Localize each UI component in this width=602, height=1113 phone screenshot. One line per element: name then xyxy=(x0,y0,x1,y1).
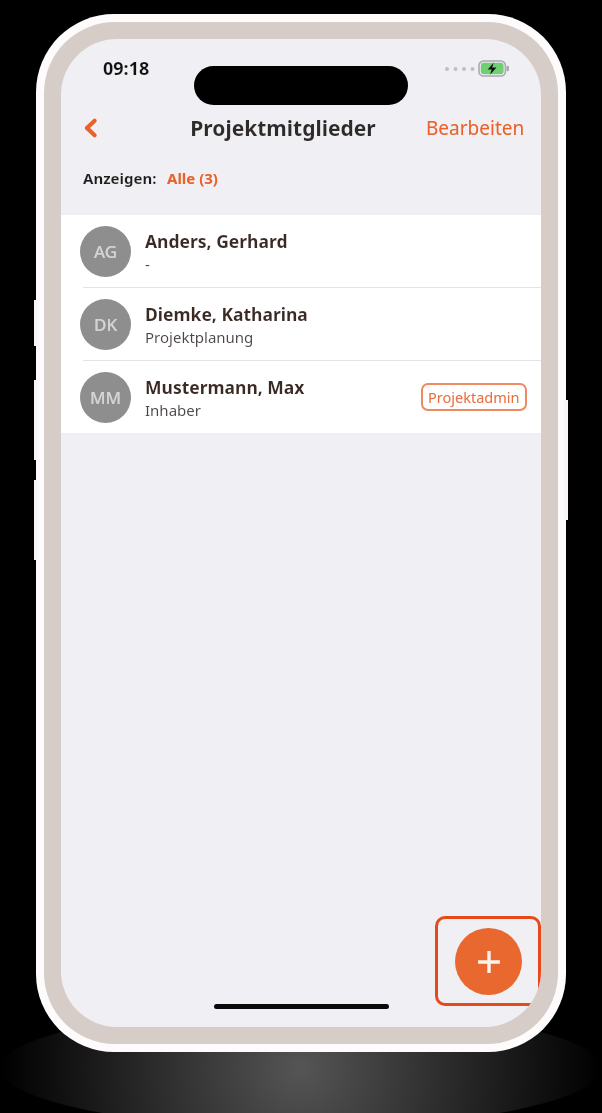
button[interactable]: Zurück xyxy=(69,106,113,150)
button[interactable]: AG xyxy=(61,215,541,287)
button[interactable]: DK xyxy=(61,288,541,360)
staticText: MM xyxy=(90,386,122,409)
staticText: Anders, Gerhard xyxy=(145,229,288,253)
staticText: Anzeigen: xyxy=(83,168,157,188)
staticText: Alle (3) xyxy=(167,168,218,188)
staticText: Projektadmin xyxy=(428,387,520,407)
button[interactable]: Projektadmin xyxy=(421,383,527,411)
staticText: Diemke, Katharina xyxy=(145,302,308,326)
button[interactable]: Alle (3) xyxy=(165,164,220,192)
staticText: Projektmitglieder xyxy=(190,114,376,143)
staticText: AG xyxy=(94,240,118,263)
button[interactable]: MM xyxy=(61,361,541,433)
staticText: Inhaber xyxy=(145,400,201,420)
button[interactable]: Bearbeiten xyxy=(422,109,529,147)
staticText: - xyxy=(145,254,150,274)
staticText: 09:18 xyxy=(103,56,150,81)
staticText: Bearbeiten xyxy=(426,115,525,141)
staticText: DK xyxy=(94,313,118,336)
staticText: Mustermann, Max xyxy=(145,375,305,399)
button[interactable]: Mitglied hinzufügen xyxy=(435,916,541,1006)
staticText: Projektplanung xyxy=(145,327,254,347)
